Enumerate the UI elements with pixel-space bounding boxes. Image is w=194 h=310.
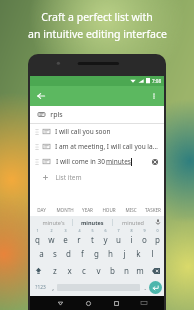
staticText: MONTH xyxy=(56,207,74,213)
button[interactable]: More options xyxy=(147,89,161,103)
button[interactable]: minutes xyxy=(73,216,112,228)
staticText: a xyxy=(39,248,44,259)
button[interactable]: z xyxy=(47,262,62,279)
button[interactable]: Voice input xyxy=(152,216,164,228)
button[interactable]: d xyxy=(61,245,75,262)
button[interactable]: Reorder xyxy=(30,154,164,169)
staticText: an intuitive editing interface xyxy=(28,27,167,41)
button[interactable]: 1 xyxy=(30,228,44,245)
staticText: d xyxy=(66,248,71,259)
button[interactable]: b xyxy=(105,262,119,279)
staticText: t xyxy=(91,234,94,245)
staticText: r xyxy=(77,234,81,245)
staticText: 4 xyxy=(78,228,81,233)
staticText: n xyxy=(124,265,129,276)
staticText: Craft a perfect list with xyxy=(41,10,153,24)
button[interactable]: m xyxy=(133,262,147,279)
staticText: minutes xyxy=(81,219,104,226)
button[interactable]: Clear xyxy=(150,157,159,166)
staticText: HOUR xyxy=(102,207,116,213)
staticText: u xyxy=(116,234,121,245)
staticText: 7 xyxy=(117,228,120,233)
button[interactable]: x xyxy=(62,262,77,279)
button[interactable]: 5 xyxy=(86,228,99,245)
button[interactable]: 2 xyxy=(44,228,58,245)
staticText: ?123 xyxy=(35,284,46,291)
button[interactable]: v xyxy=(91,262,105,279)
button[interactable]: a xyxy=(35,245,48,262)
button[interactable]: Recents xyxy=(102,296,130,310)
staticText: h xyxy=(108,248,113,259)
button[interactable]: 4 xyxy=(72,228,86,245)
button[interactable]: Reorder xyxy=(30,139,164,154)
staticText: DAY xyxy=(37,207,46,213)
button[interactable]: . xyxy=(140,279,149,295)
staticText: x xyxy=(67,265,72,276)
button[interactable]: n xyxy=(119,262,133,279)
staticText: I will call you soon xyxy=(55,127,159,136)
staticText: b xyxy=(110,265,115,276)
staticText: I will come in 30 xyxy=(55,157,106,166)
button[interactable]: List item xyxy=(30,169,164,185)
button[interactable]: TASKER xyxy=(142,203,164,216)
button[interactable]: rpls xyxy=(30,106,164,123)
button[interactable]: c xyxy=(77,262,91,279)
staticText: YEAR xyxy=(82,207,93,213)
button[interactable]: f xyxy=(75,245,89,262)
button[interactable]: minute's xyxy=(34,216,72,228)
staticText: minutes xyxy=(106,157,131,166)
button[interactable]: Backspace xyxy=(147,262,164,279)
staticText: l xyxy=(151,248,154,259)
button[interactable]: k xyxy=(131,245,145,262)
button[interactable]: 9 xyxy=(138,228,151,245)
button[interactable]: l xyxy=(145,245,159,262)
button[interactable]: h xyxy=(103,245,117,262)
button[interactable]: Enter xyxy=(149,281,162,294)
button[interactable]: s xyxy=(48,245,61,262)
staticText: i xyxy=(130,234,133,245)
button[interactable]: j xyxy=(117,245,131,262)
button[interactable]: minuted xyxy=(113,216,152,228)
staticText: I am at meeting, I will call you later xyxy=(55,142,159,151)
button[interactable]: Back xyxy=(34,89,48,103)
staticText: y xyxy=(103,234,108,245)
staticText: 2 xyxy=(50,228,53,233)
staticText: 8 xyxy=(130,228,133,233)
button[interactable]: , xyxy=(48,279,57,295)
staticText: , xyxy=(52,283,54,292)
other: Reorder xyxy=(35,128,39,136)
button[interactable]: Back xyxy=(46,296,74,310)
staticText: 5 xyxy=(91,228,94,233)
staticText: k xyxy=(136,248,141,259)
button[interactable]: Home xyxy=(74,296,102,310)
staticText: 3 xyxy=(64,228,67,233)
button[interactable]: ?123 xyxy=(32,279,48,295)
staticText: 0 xyxy=(156,228,159,233)
staticText: p xyxy=(155,234,160,245)
staticText: 6 xyxy=(104,228,107,233)
staticText: q xyxy=(35,234,40,245)
button[interactable]: YEAR xyxy=(76,203,98,216)
staticText: List item xyxy=(55,173,82,182)
staticText: v xyxy=(96,265,101,276)
button[interactable]: 8 xyxy=(125,228,138,245)
button[interactable]: 3 xyxy=(58,228,72,245)
staticText: 9 xyxy=(143,228,146,233)
button[interactable]: HOUR xyxy=(98,203,120,216)
button[interactable]: MISC xyxy=(120,203,142,216)
button[interactable]: MONTH xyxy=(53,203,76,216)
other: Reorder xyxy=(35,158,39,166)
button[interactable]: Reorder xyxy=(30,124,164,139)
staticText: MISC xyxy=(125,207,137,213)
button[interactable]: g xyxy=(89,245,103,262)
staticText: 7:08 xyxy=(152,78,161,84)
button[interactable]: 6 xyxy=(99,228,112,245)
staticText: g xyxy=(94,248,99,259)
button[interactable]: 7 xyxy=(112,228,125,245)
button[interactable]: Shift xyxy=(30,262,47,279)
button[interactable]: Hide keyboard xyxy=(130,296,158,310)
button[interactable]: DAY xyxy=(30,203,53,216)
staticText: o xyxy=(142,234,147,245)
button[interactable]: 0 xyxy=(151,228,164,245)
